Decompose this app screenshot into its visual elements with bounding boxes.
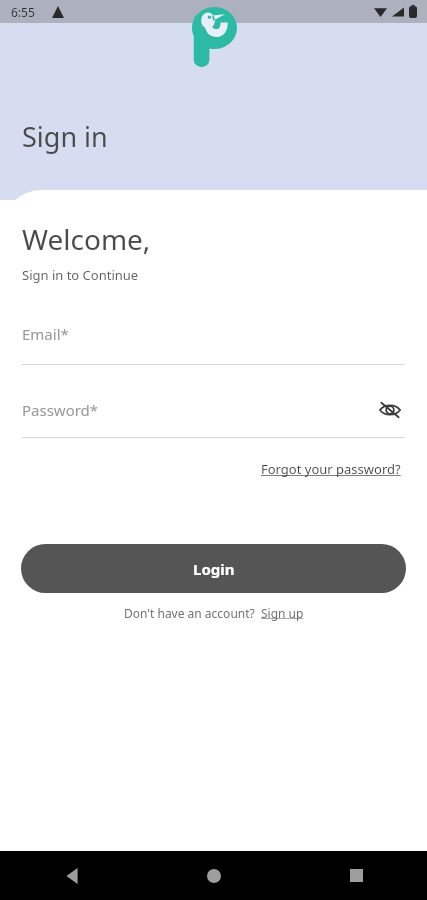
staticText: Forgot your password?	[261, 460, 401, 478]
staticText: Don't have an account?	[124, 605, 255, 621]
button[interactable]: Back	[0, 851, 143, 900]
button[interactable]: Show password	[375, 395, 405, 425]
staticText: Welcome,	[22, 220, 151, 258]
staticText: Sign in to Continue	[22, 266, 139, 284]
button[interactable]: Forgot your password?	[257, 456, 405, 482]
staticText: Login	[193, 559, 235, 579]
staticText: Password*	[22, 400, 375, 420]
staticText: 6:55	[11, 4, 35, 20]
button[interactable]: Email*	[22, 324, 405, 365]
staticText: Email*	[22, 324, 69, 344]
staticText: Sign in	[22, 118, 108, 155]
button[interactable]: Password*	[22, 395, 405, 438]
button[interactable]: Login	[21, 544, 406, 593]
button[interactable]: Home	[143, 851, 285, 900]
staticText: Sign up	[261, 605, 304, 621]
button[interactable]: Sign up	[261, 605, 304, 621]
button[interactable]: Recent apps	[285, 851, 427, 900]
